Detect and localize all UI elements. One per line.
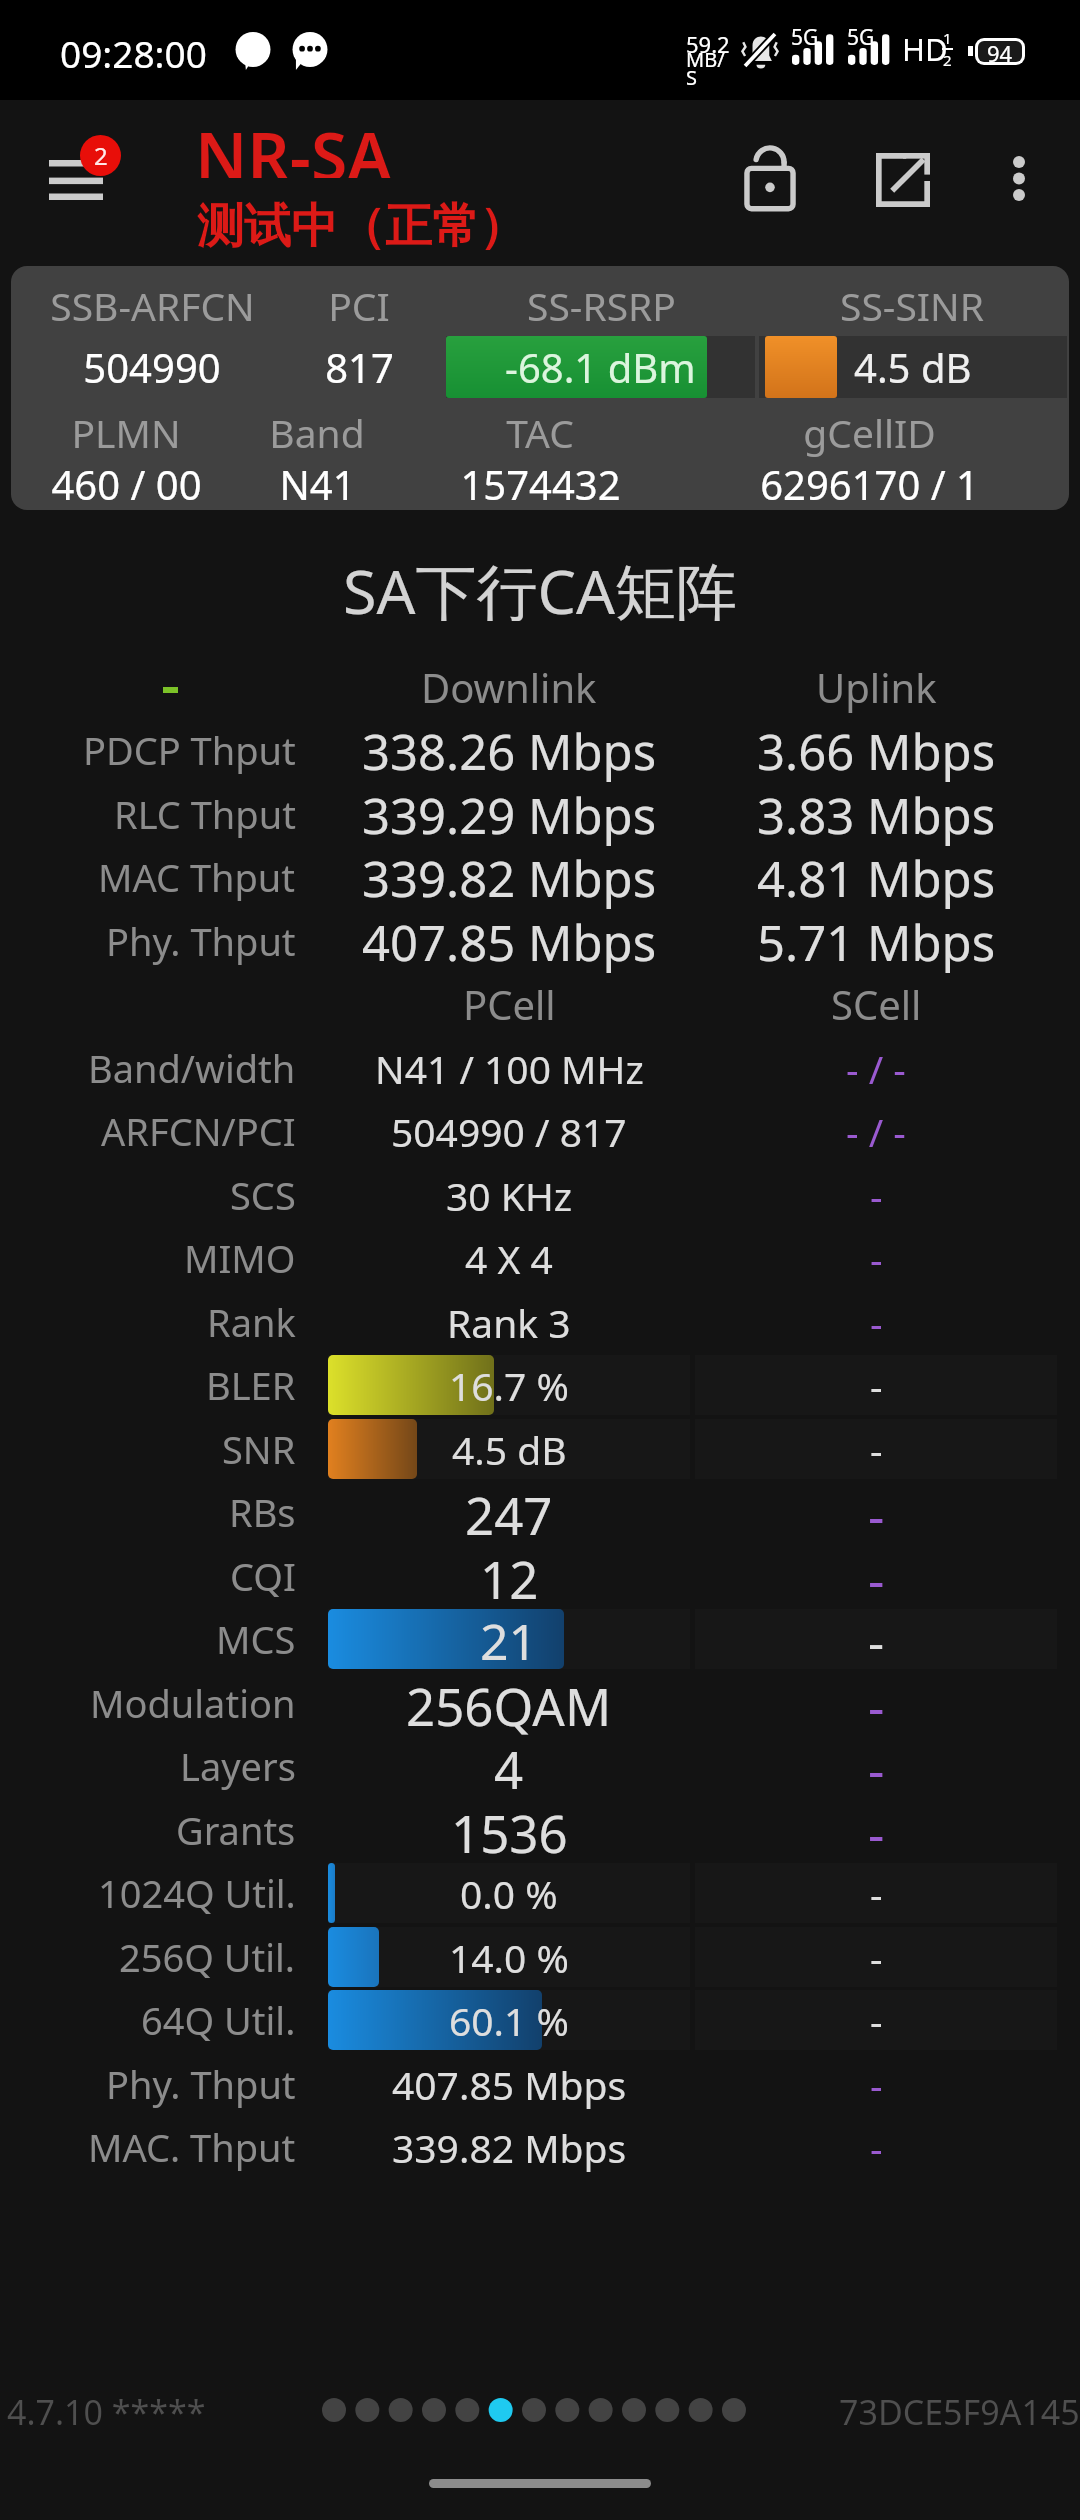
staticText: RLC Thput (114, 788, 296, 840)
button[interactable]: Menu (34, 128, 134, 224)
staticText: SA下行CA矩阵 (343, 549, 737, 621)
staticText: SCell (831, 977, 922, 1031)
staticText: - (870, 2121, 883, 2174)
staticText: 73DCE5F9A145 (839, 2389, 1080, 2435)
staticText: 4 X 4 (465, 1232, 553, 1285)
staticText: 504990 / 817 (391, 1105, 627, 1158)
staticText: 5G (847, 23, 875, 52)
staticText: - (868, 1671, 885, 1735)
staticText: 1 (943, 28, 952, 48)
staticText: - / - (846, 1042, 906, 1095)
staticText: 256QAM (406, 1671, 612, 1735)
staticText: Modulation (90, 1677, 296, 1729)
staticText: Downlink (421, 660, 597, 714)
staticText: N41 (279, 457, 356, 510)
staticText: Phy. Thput (106, 2058, 296, 2110)
staticText: ARFCN/PCI (101, 1105, 296, 1157)
staticText: - / - (846, 1105, 906, 1158)
staticText: MAC. Thput (88, 2121, 296, 2173)
staticText: 2 (94, 139, 108, 172)
staticText: MCS (216, 1613, 296, 1665)
staticText: PCI (328, 279, 390, 332)
staticText: Uplink (816, 660, 937, 714)
staticText: RBs (229, 1486, 296, 1538)
staticText: 测试中（正常） (197, 197, 526, 256)
staticText: - (870, 1169, 883, 1222)
staticText: 339.82 Mbps (362, 845, 657, 909)
staticText: - (870, 1296, 883, 1349)
staticText: - (870, 1232, 883, 1285)
staticText: 5G (791, 23, 819, 52)
staticText: BLER (206, 1359, 296, 1411)
staticText: 94 (987, 38, 1013, 65)
staticText: 60.1 % (449, 1994, 569, 2047)
staticText: 4.81 Mbps (757, 845, 996, 909)
staticText: MAC Thput (98, 851, 296, 903)
staticText: - (870, 1931, 883, 1984)
staticText: - (868, 1798, 885, 1862)
button[interactable]: Unlock (726, 134, 814, 222)
staticText: 256Q Util. (119, 1931, 296, 1983)
staticText: SS-RSRP (527, 279, 676, 332)
staticText: SSB-ARFCN (50, 279, 255, 332)
staticText: Layers (180, 1740, 296, 1792)
staticText: 1536 (451, 1798, 568, 1862)
staticText: SCS (230, 1169, 296, 1221)
staticText: Band (269, 406, 365, 459)
staticText: Rank 3 (447, 1296, 571, 1349)
staticText: PLMN (71, 406, 181, 459)
staticText: 339.82 Mbps (392, 2121, 627, 2174)
staticText: 247 (465, 1480, 553, 1544)
staticText: 21 (480, 1607, 538, 1671)
staticText: - (870, 2058, 883, 2111)
staticText: 3.83 Mbps (757, 782, 996, 846)
staticText: 12 (480, 1544, 539, 1608)
staticText: 6296170 / 1 (760, 457, 979, 510)
staticText: 3.66 Mbps (757, 718, 996, 782)
staticText: 817 (325, 340, 394, 394)
staticText: 339.29 Mbps (362, 782, 657, 846)
staticText: 338.26 Mbps (362, 718, 657, 782)
staticText: - (870, 1359, 883, 1412)
staticText: PCell (463, 977, 556, 1031)
button[interactable]: More options (979, 138, 1059, 218)
staticText: MIMO (184, 1232, 296, 1284)
staticText: - (868, 1607, 885, 1671)
staticText: 16.7 % (449, 1359, 569, 1412)
staticText: - (868, 1544, 885, 1608)
staticText: N41 / 100 MHz (375, 1042, 644, 1095)
staticText: - (870, 1423, 883, 1476)
staticText: 30 KHz (446, 1169, 573, 1222)
staticText: Rank (207, 1296, 296, 1348)
staticText: 2 (943, 50, 952, 70)
staticText: 460 / 00 (51, 457, 202, 510)
staticText: SNR (222, 1423, 296, 1475)
staticText: 4.5 dB (452, 1423, 567, 1476)
staticText: 1024Q Util. (98, 1867, 296, 1919)
staticText: HD (902, 28, 948, 70)
staticText: 1574432 (460, 457, 621, 510)
staticText: - (870, 1867, 883, 1920)
staticText: - (870, 1994, 883, 2047)
staticText: 0.0 % (460, 1867, 558, 1920)
staticText: 09:28:00 (60, 28, 207, 78)
staticText: 407.85 Mbps (362, 909, 657, 973)
staticText: Phy. Thput (106, 915, 296, 967)
staticText: 5.71 Mbps (757, 909, 996, 973)
staticText: 14.0 % (449, 1931, 569, 1984)
staticText: 504990 (83, 340, 221, 394)
staticText: 4.5 dB (854, 340, 972, 394)
staticText: NR-SA (195, 110, 392, 178)
staticText: - (868, 1480, 885, 1544)
staticText: Band/width (88, 1042, 296, 1094)
staticText: gCellID (803, 406, 936, 459)
staticText: 59.2 (686, 29, 730, 59)
staticText: 407.85 Mbps (392, 2058, 627, 2111)
staticText: TAC (506, 406, 574, 459)
staticText: CQI (230, 1550, 296, 1602)
button[interactable]: Open external (859, 136, 947, 224)
staticText: Grants (176, 1804, 296, 1856)
staticText: - (868, 1734, 885, 1798)
staticText: 64Q Util. (141, 1994, 296, 2046)
staticText: 4.7.10 ***** (7, 2389, 206, 2435)
